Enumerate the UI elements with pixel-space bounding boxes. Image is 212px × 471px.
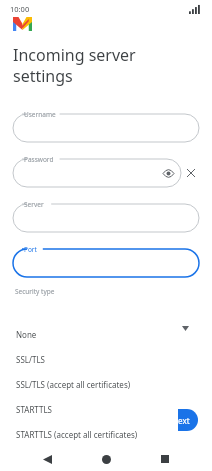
- button[interactable]: Security type dropdown: [182, 326, 189, 331]
- staticText: 10:00: [10, 4, 30, 14]
- button[interactable]: Server: [13, 198, 199, 232]
- button[interactable]: Home: [94, 447, 118, 471]
- button[interactable]: None: [5, 322, 178, 347]
- button[interactable]: Username: [13, 108, 199, 142]
- button[interactable]: Next: [148, 409, 198, 431]
- button[interactable]: Password: [13, 153, 181, 187]
- button[interactable]: Back: [35, 447, 59, 471]
- button[interactable]: Port: [13, 243, 199, 277]
- staticText: SSL/TLS (accept all certificates): [16, 379, 131, 390]
- staticText: STARTTLS (accept all certificates): [16, 429, 138, 440]
- staticText: Next: [172, 415, 190, 426]
- button[interactable]: SSL/TLS (accept all certificates): [5, 372, 178, 397]
- button[interactable]: STARTTLS: [5, 397, 178, 422]
- staticText: None: [16, 329, 37, 340]
- button[interactable]: Clear: [183, 165, 199, 181]
- button[interactable]: Show password: [160, 165, 176, 181]
- staticText: SSL/TLS: [16, 354, 45, 365]
- button[interactable]: STARTTLS (accept all certificates): [5, 422, 178, 447]
- staticText: Username: [24, 110, 56, 119]
- button[interactable]: SSL/TLS: [5, 347, 178, 372]
- staticText: Password: [24, 155, 54, 164]
- button[interactable]: Recent apps: [153, 447, 177, 471]
- staticText: Port: [24, 245, 37, 254]
- staticText: Security type: [15, 287, 55, 296]
- staticText: Incoming server settings: [13, 44, 136, 87]
- staticText: Server: [24, 200, 44, 209]
- staticText: STARTTLS: [16, 404, 53, 415]
